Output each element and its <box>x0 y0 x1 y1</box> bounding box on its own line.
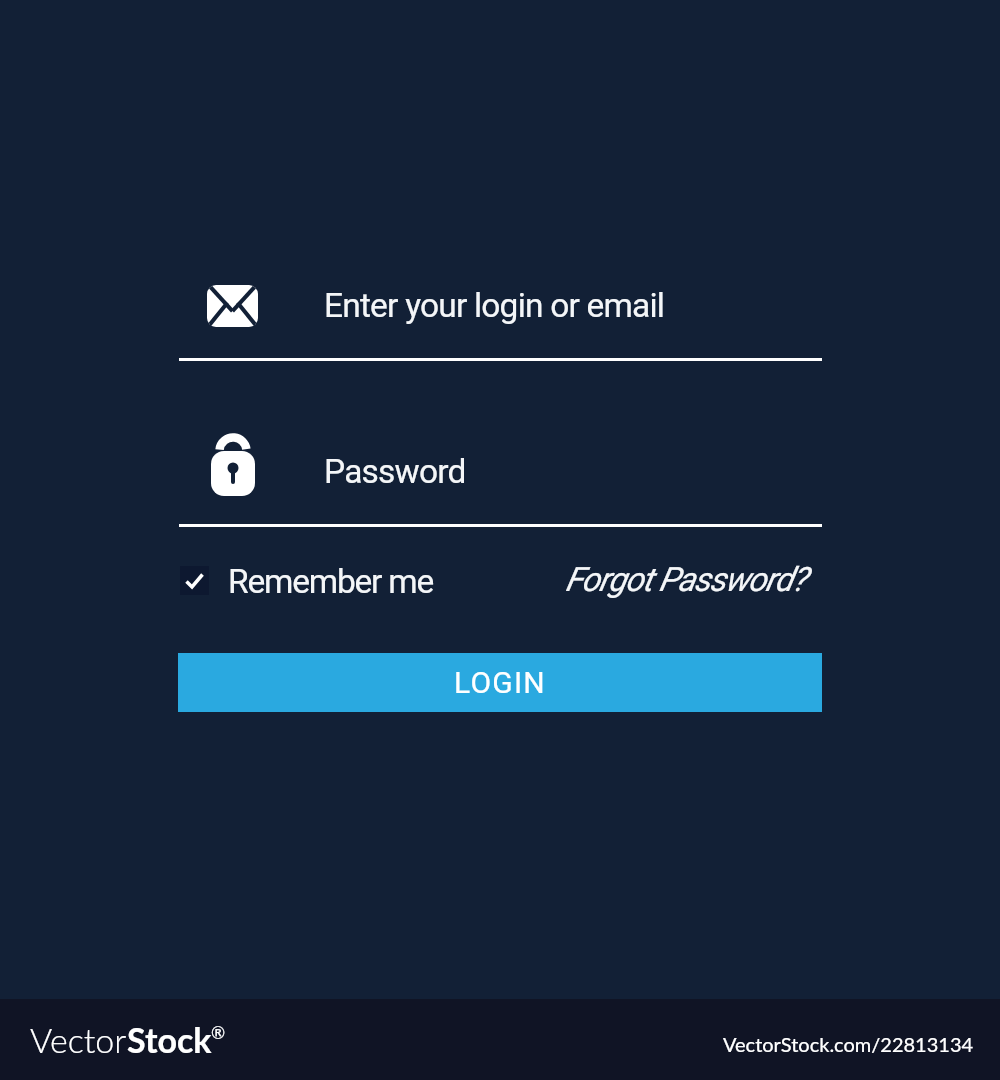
button[interactable] <box>178 560 468 602</box>
button[interactable] <box>179 278 822 362</box>
staticText: VectorStock.com/22813134 <box>723 1032 974 1056</box>
staticText: Password <box>324 452 466 491</box>
staticText: Stock <box>127 1019 212 1060</box>
button[interactable] <box>179 442 822 526</box>
staticText: ® <box>211 1022 226 1042</box>
staticText: Enter your login or email <box>324 286 665 325</box>
button[interactable]: LOGIN <box>178 653 822 712</box>
staticText: LOGIN <box>454 665 546 700</box>
staticText: Remember me <box>228 562 434 601</box>
staticText: Forgot Password? <box>565 560 806 599</box>
button[interactable]: Forgot Password? <box>443 556 806 602</box>
staticText: Vector <box>30 1019 127 1060</box>
